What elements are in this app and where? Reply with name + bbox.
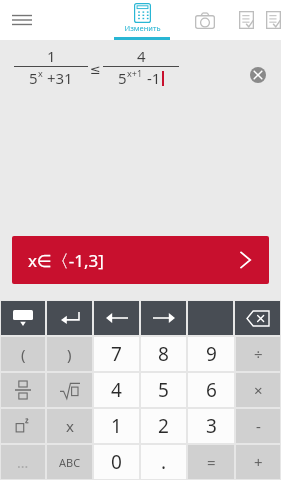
staticText: 9 bbox=[206, 341, 217, 367]
button[interactable]: enter bbox=[47, 301, 92, 335]
button[interactable]: sqrt bbox=[47, 373, 92, 407]
staticText: ABC bbox=[59, 455, 81, 470]
button[interactable]: x∈〈-1,3] bbox=[12, 236, 269, 284]
staticText: ≤ bbox=[90, 62, 101, 77]
staticText: Изменить bbox=[124, 23, 161, 33]
staticText: = bbox=[207, 452, 216, 472]
staticText: x bbox=[38, 67, 43, 79]
staticText: 1 bbox=[47, 46, 56, 66]
button[interactable]: 4 bbox=[94, 373, 139, 407]
button[interactable]: 6 bbox=[188, 373, 234, 407]
staticText: + bbox=[254, 452, 263, 472]
button[interactable]: ( bbox=[1, 337, 45, 371]
button[interactable]: - bbox=[236, 409, 280, 443]
staticText: . bbox=[161, 449, 167, 475]
button[interactable]: 1 bbox=[94, 409, 139, 443]
button[interactable]: . bbox=[141, 445, 186, 479]
staticText: 5 bbox=[158, 377, 169, 403]
staticText: 1 bbox=[111, 413, 122, 439]
button[interactable]: Notebook bbox=[226, 0, 266, 40]
button[interactable]: × bbox=[236, 373, 280, 407]
staticText: ÷ bbox=[254, 344, 263, 364]
staticText: - bbox=[256, 416, 261, 436]
button[interactable]: ABC bbox=[47, 445, 92, 479]
button[interactable]: More bbox=[266, 0, 281, 40]
button[interactable]: = bbox=[188, 445, 234, 479]
button[interactable]: left bbox=[94, 301, 139, 335]
staticText: ( bbox=[21, 344, 26, 364]
button[interactable]: Изменить bbox=[110, 0, 174, 40]
staticText: 5 bbox=[29, 68, 38, 88]
staticText: -1 bbox=[143, 68, 161, 88]
staticText: 2 bbox=[158, 413, 169, 439]
staticText: 5 bbox=[118, 68, 127, 88]
button[interactable]: ÷ bbox=[236, 337, 280, 371]
button[interactable]: right bbox=[141, 301, 186, 335]
staticText: ... bbox=[17, 453, 29, 472]
button[interactable]: kbhide bbox=[1, 301, 45, 335]
staticText: 4 bbox=[111, 377, 122, 403]
button[interactable]: 3 bbox=[188, 409, 234, 443]
button[interactable]: Camera bbox=[185, 0, 225, 40]
button[interactable]: x bbox=[47, 409, 92, 443]
button[interactable]: 7 bbox=[94, 337, 139, 371]
staticText: +31 bbox=[43, 68, 73, 88]
button[interactable]: bksp bbox=[235, 301, 280, 335]
button[interactable]: frac bbox=[1, 373, 45, 407]
staticText: 4 bbox=[137, 46, 146, 66]
staticText: 8 bbox=[158, 341, 169, 367]
staticText: × bbox=[254, 380, 263, 400]
staticText: x bbox=[66, 416, 74, 436]
button[interactable]: Menu bbox=[0, 0, 44, 40]
staticText: 3 bbox=[206, 413, 217, 439]
staticText: ) bbox=[67, 344, 72, 364]
staticText: 7 bbox=[111, 341, 122, 367]
button[interactable]: 0 bbox=[94, 445, 139, 479]
button[interactable]: 2 bbox=[141, 409, 186, 443]
staticText: x∈〈-1,3] bbox=[28, 249, 104, 272]
staticText: 6 bbox=[206, 377, 217, 403]
staticText: x+1 bbox=[127, 67, 143, 79]
button[interactable]: 9 bbox=[188, 337, 234, 371]
button[interactable]: Clear bbox=[245, 62, 271, 88]
button[interactable]: sq bbox=[1, 409, 45, 443]
button[interactable]: ) bbox=[47, 337, 92, 371]
button[interactable]: 5 bbox=[141, 373, 186, 407]
staticText: 0 bbox=[111, 449, 122, 475]
button[interactable]: + bbox=[236, 445, 280, 479]
button[interactable]: 8 bbox=[141, 337, 186, 371]
